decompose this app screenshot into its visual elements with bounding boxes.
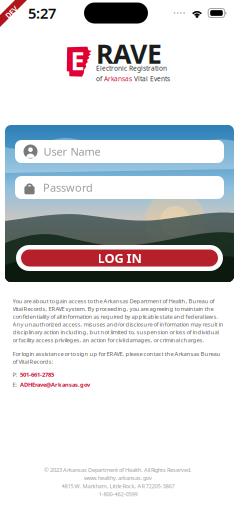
staticText: of: [96, 74, 104, 83]
staticText: RAVE: [96, 35, 162, 71]
staticText: Vital Events: [132, 74, 170, 83]
staticText: E: [70, 43, 84, 78]
staticText: © 2023 Arkansas Department of Health. Al…: [44, 466, 192, 474]
staticText: 1-800-462-0599: [98, 490, 137, 498]
staticText: www.healthy.arkansas.gov: [84, 474, 152, 482]
staticText: P:: [12, 371, 17, 378]
staticText: For login assistance or to sign up for E…: [12, 350, 220, 365]
staticText: E:: [12, 381, 17, 388]
button[interactable]: LOG IN: [16, 245, 223, 271]
button[interactable]: E:: [12, 380, 223, 388]
staticText: LOG IN: [97, 249, 141, 267]
staticText: DEV: [4, 7, 18, 17]
staticText: 5:27: [28, 3, 56, 23]
staticText: 501-661-2785: [20, 371, 54, 378]
staticText: Electronic Registration: [96, 64, 167, 73]
button[interactable]: P:: [12, 370, 223, 378]
staticText: 4815 W. Markham, Little Rock, AR 72205-3…: [61, 482, 174, 490]
staticText: Password: [43, 180, 93, 195]
staticText: Arkansas: [104, 74, 132, 83]
staticText: User Name: [43, 144, 100, 159]
staticText: You are about to gain access to the Arka…: [12, 297, 223, 344]
staticText: ADHErave@Arkansas.gov: [20, 381, 90, 388]
